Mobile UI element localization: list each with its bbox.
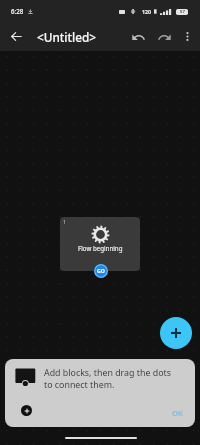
button[interactable]: Add block [160,317,192,349]
button[interactable]: OK [166,404,189,422]
staticText: GO [97,267,105,274]
button[interactable]: GO [94,264,108,278]
staticText: 57 [180,9,185,15]
staticText: Flow beginning [78,244,123,252]
staticText: Add blocks, then drag the dots to connec… [44,367,174,391]
staticText: OK [172,408,183,418]
button[interactable]: More options [176,26,198,48]
button[interactable]: Redo [153,26,175,48]
button[interactable]: Add [21,405,32,416]
staticText: <Untitled> [37,29,97,45]
button[interactable]: Undo [127,26,149,48]
staticText: 1 [63,218,67,225]
staticText: 6:28 [11,7,24,15]
staticText: 120 [142,8,151,15]
button[interactable]: 1 [60,217,140,271]
button[interactable]: Back [5,25,28,48]
